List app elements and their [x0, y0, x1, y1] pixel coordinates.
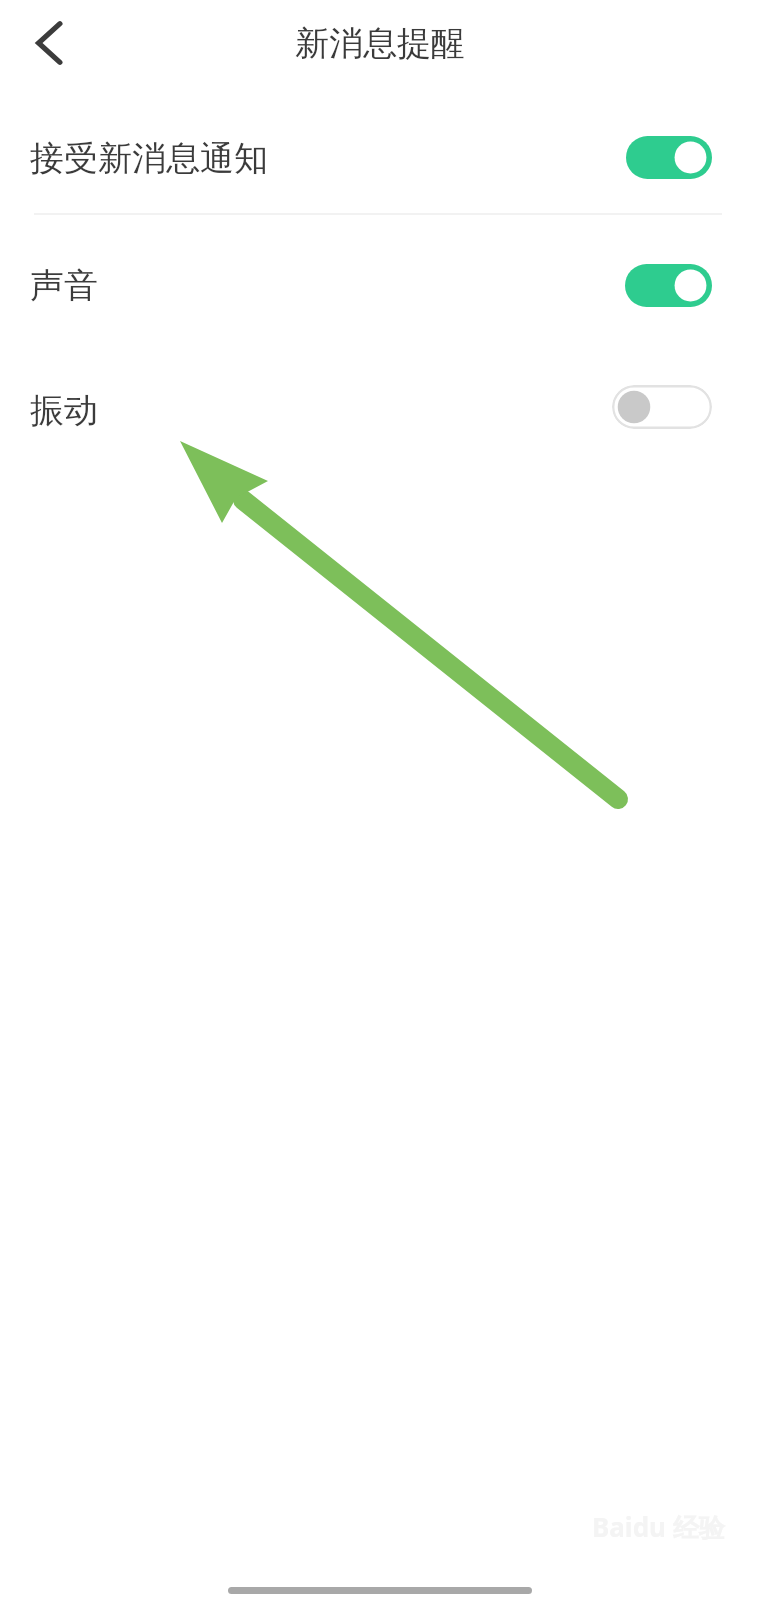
button[interactable]: 声音	[625, 264, 712, 307]
button[interactable]: 振动	[612, 385, 712, 429]
staticText: 接受新消息通知	[30, 137, 268, 180]
staticText: Baidu 经验	[592, 1509, 725, 1545]
button[interactable]: 振动	[0, 362, 760, 458]
staticText: 声音	[30, 264, 98, 307]
staticText: 振动	[30, 389, 98, 432]
button[interactable]: 接受新消息通知	[0, 108, 760, 208]
button[interactable]: 声音	[0, 237, 760, 333]
button[interactable]: 接受新消息通知	[626, 136, 712, 179]
staticText: 新消息提醒	[295, 22, 465, 65]
button[interactable]: Back	[17, 11, 81, 75]
